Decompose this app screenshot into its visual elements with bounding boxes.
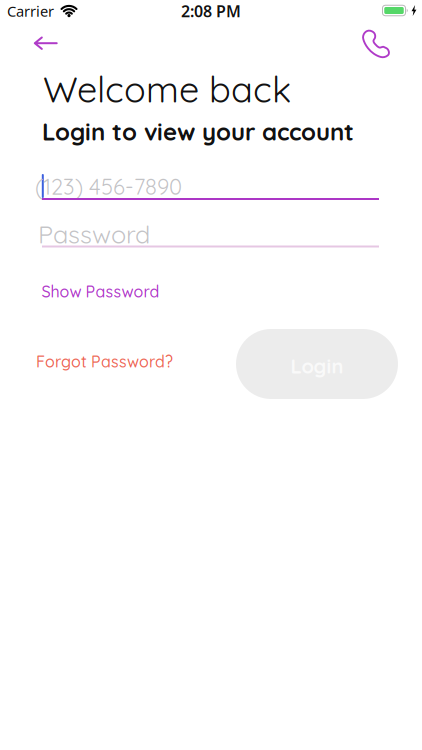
staticText: Welcome back (43, 66, 291, 111)
button[interactable]: Show Password (37, 277, 163, 305)
staticText: Password (38, 218, 150, 250)
staticText: Show Password (41, 281, 159, 301)
button[interactable]: Login (236, 329, 398, 399)
staticText: Carrier (7, 1, 54, 21)
staticText: Login (290, 353, 343, 378)
staticText: 2:08 PM (181, 0, 241, 22)
staticText: Forgot Password? (36, 351, 173, 371)
staticText: (123) 456-7890 (35, 173, 182, 200)
staticText: Login to view your account (42, 116, 354, 146)
button[interactable]: Back (23, 26, 68, 60)
button[interactable]: Call (353, 21, 398, 66)
button[interactable]: Forgot Password? (32, 347, 177, 375)
